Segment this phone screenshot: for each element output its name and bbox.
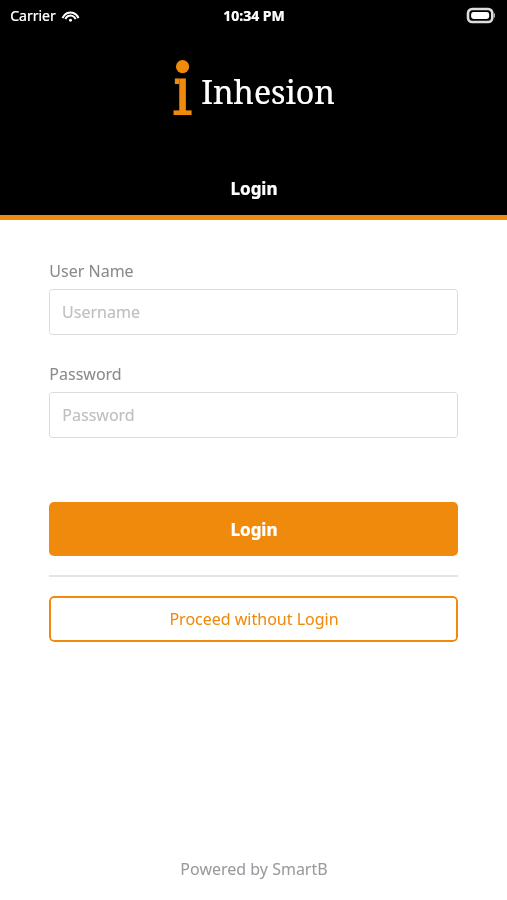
staticText: Login (230, 518, 278, 541)
staticText: Powered by SmartB (180, 858, 328, 880)
staticText: Carrier (10, 6, 56, 25)
other: Wi-Fi (62, 9, 79, 22)
staticText: Password (62, 404, 135, 426)
button[interactable]: Password (49, 392, 458, 438)
staticText: Login (230, 177, 278, 200)
staticText: Password (49, 363, 122, 385)
staticText: Username (62, 301, 140, 323)
other: Battery (468, 9, 495, 22)
button[interactable]: Proceed without Login (49, 596, 458, 642)
staticText: Inhesion (201, 70, 335, 114)
button[interactable]: Login (49, 502, 458, 556)
staticText: Proceed without Login (169, 608, 339, 630)
staticText: User Name (49, 260, 134, 282)
staticText: 10:34 PM (223, 6, 285, 25)
button[interactable]: Username (49, 289, 458, 335)
